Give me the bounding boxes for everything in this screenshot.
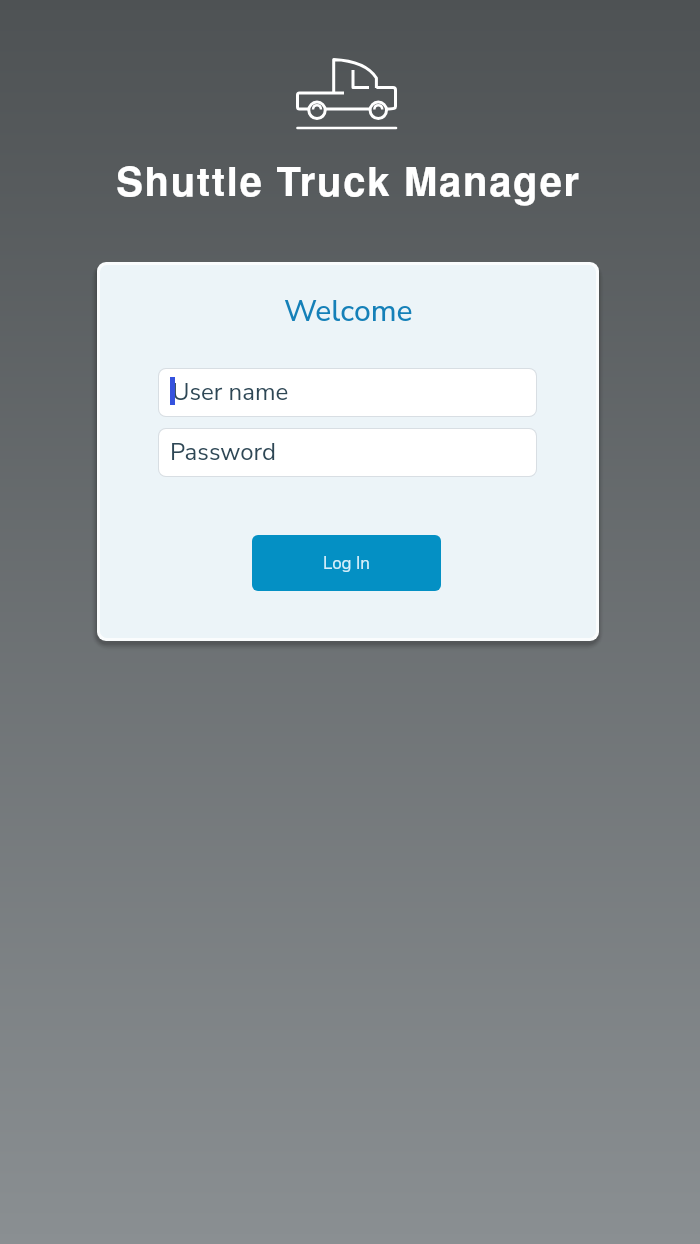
other: Shuttle Truck Manager logo bbox=[295, 58, 399, 132]
button[interactable]: Log In bbox=[252, 535, 441, 591]
staticText: Welcome bbox=[284, 291, 413, 332]
staticText: User name bbox=[172, 376, 289, 409]
staticText: Password bbox=[170, 436, 276, 469]
staticText: Shuttle Truck Manager bbox=[116, 151, 581, 208]
button[interactable]: User name bbox=[159, 369, 536, 416]
button[interactable]: Password bbox=[159, 429, 536, 476]
staticText: Log In bbox=[323, 552, 370, 575]
